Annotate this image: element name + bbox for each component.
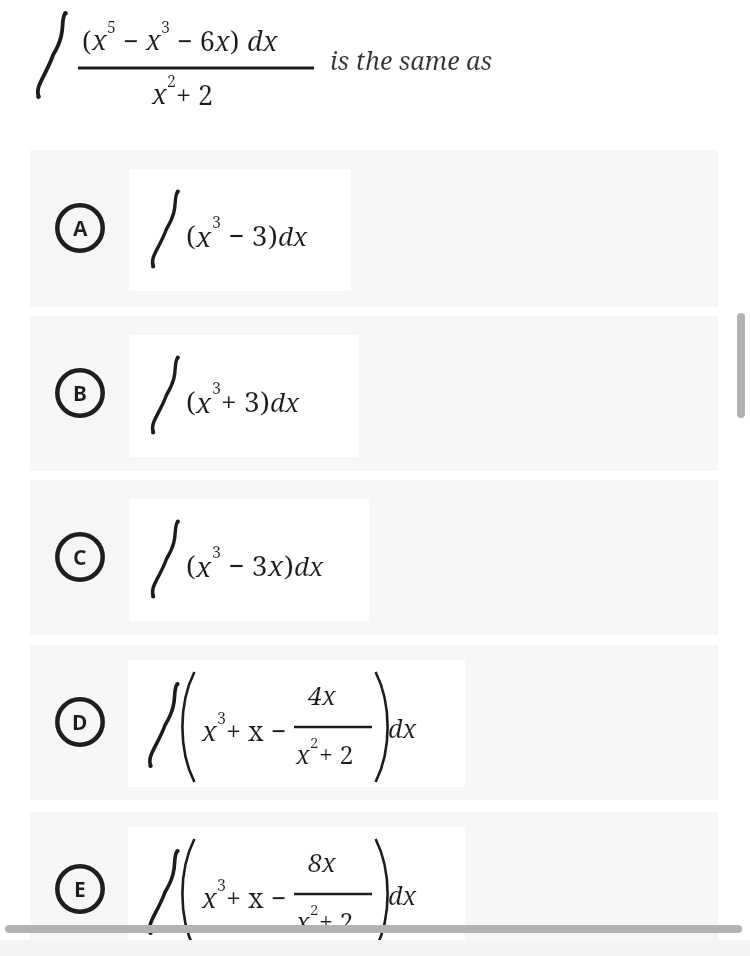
staticText: x <box>196 547 212 585</box>
staticText: D <box>72 708 88 737</box>
staticText: + 2 <box>319 904 354 938</box>
staticText: dx <box>240 22 278 59</box>
staticText: 2 <box>167 70 176 92</box>
staticText: ( <box>82 22 92 59</box>
staticText: + 2 <box>176 76 214 113</box>
staticText: 5 <box>107 16 116 38</box>
staticText: ) <box>284 546 294 584</box>
staticText: ( <box>186 216 196 254</box>
button[interactable]: A <box>30 150 718 307</box>
staticText: 8x <box>308 845 336 879</box>
staticText: is the same as <box>330 43 493 77</box>
staticText: x <box>152 75 167 112</box>
button[interactable]: C <box>30 480 718 635</box>
staticText: 3 <box>217 707 226 729</box>
staticText: 3 <box>212 541 221 563</box>
staticText: x <box>296 737 310 771</box>
button[interactable]: B <box>30 316 718 471</box>
staticText: + 2 <box>319 737 354 771</box>
staticText: 2 <box>310 899 319 919</box>
staticText: x <box>202 879 217 916</box>
staticText: − <box>116 22 146 59</box>
staticText: x <box>296 904 310 938</box>
staticText: ( <box>186 382 196 420</box>
staticText: x <box>268 546 284 584</box>
staticText: 3 <box>161 16 170 38</box>
staticText: + 3 <box>221 382 260 420</box>
button[interactable]: D <box>30 645 718 800</box>
staticText: 4x <box>308 678 336 712</box>
staticText: C <box>73 543 87 572</box>
staticText: 3 <box>212 377 221 399</box>
staticText: B <box>73 379 87 408</box>
staticText: 3 <box>217 874 226 896</box>
staticText: dx <box>388 711 417 745</box>
staticText: x <box>196 217 212 255</box>
staticText: x <box>196 383 212 421</box>
staticText: dx <box>270 384 300 419</box>
staticText: dx <box>388 878 417 912</box>
button[interactable]: E <box>30 812 718 956</box>
staticText: + x − <box>226 712 287 749</box>
staticText: 3 <box>212 211 221 233</box>
staticText: ) <box>260 382 270 420</box>
staticText: − 3 <box>221 546 268 584</box>
staticText: ) <box>268 216 278 254</box>
staticText: ( <box>186 546 196 584</box>
staticText: x <box>92 21 107 58</box>
staticText: dx <box>278 218 308 253</box>
staticText: − 6 <box>170 22 215 59</box>
staticText: x <box>215 22 230 59</box>
staticText: E <box>74 875 86 904</box>
staticText: dx <box>294 548 324 583</box>
staticText: ) <box>230 22 240 59</box>
staticText: A <box>73 214 88 243</box>
staticText: x <box>202 712 217 749</box>
staticText: + x − <box>226 879 287 916</box>
staticText: 2 <box>310 732 319 752</box>
staticText: − 3 <box>221 216 268 254</box>
staticText: x <box>146 21 161 58</box>
